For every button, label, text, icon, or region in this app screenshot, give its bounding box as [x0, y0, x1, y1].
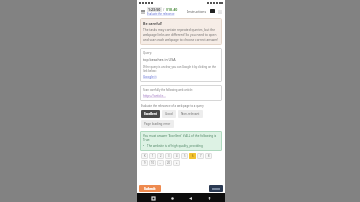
- staticText: Submit: [144, 187, 156, 191]
- button[interactable]: Submit: [139, 185, 161, 192]
- button[interactable]: Fullscreen: [210, 9, 215, 13]
- staticText: Instructions: [187, 9, 207, 14]
- button[interactable]: More options: [217, 9, 222, 14]
- staticText: 1:23:50: [148, 7, 161, 12]
- button[interactable]: 7: [197, 153, 204, 159]
- button[interactable]: Excellent: [141, 110, 160, 118]
- staticText: 1: [152, 154, 154, 158]
- staticText: Google it: [143, 75, 157, 79]
- staticText: 6: [192, 154, 194, 158]
- button[interactable]: https://article...: [143, 94, 219, 98]
- staticText: The website is of high quality, providin…: [147, 144, 203, 148]
- staticText: /: [163, 7, 165, 12]
- staticText: If the query is unclear, you can Google …: [143, 65, 219, 73]
- staticText: You must answer 'Excellent' if ALL of th…: [143, 134, 219, 142]
- staticText: K: [144, 154, 146, 158]
- staticText: +: [176, 161, 178, 165]
- staticText: 8: [208, 154, 210, 158]
- staticText: Non-relevant: [181, 112, 200, 116]
- button[interactable]: Next: [209, 185, 223, 192]
- button[interactable]: 20: [165, 160, 172, 166]
- button[interactable]: Page loading error: [141, 120, 174, 128]
- button[interactable]: Google it: [143, 75, 157, 79]
- button[interactable]: 4: [173, 153, 180, 159]
- staticText: Good: [165, 112, 173, 116]
- button[interactable]: 10: [149, 160, 156, 166]
- staticText: Query:: [143, 51, 152, 55]
- staticText: 7: [200, 154, 202, 158]
- button[interactable]: +: [173, 160, 180, 166]
- staticText: $18.40: [166, 7, 178, 12]
- staticText: 2: [160, 154, 162, 158]
- staticText: Page loading error: [144, 122, 171, 126]
- button[interactable]: K: [141, 153, 148, 159]
- button[interactable]: Menu: [140, 9, 145, 14]
- staticText: The tasks may contain repeated queries, …: [143, 28, 219, 42]
- button[interactable]: ...: [157, 160, 164, 166]
- staticText: 10: [151, 161, 154, 165]
- staticText: 5: [184, 154, 186, 158]
- button[interactable]: Assistant: [206, 195, 212, 201]
- button[interactable]: 9: [141, 160, 148, 166]
- staticText: Evaluate the relevance: [147, 12, 175, 16]
- staticText: 9: [144, 161, 146, 165]
- button[interactable]: 6: [189, 153, 196, 159]
- staticText: Excellent: [144, 112, 157, 116]
- button[interactable]: Good: [162, 110, 176, 118]
- button[interactable]: 5: [181, 153, 188, 159]
- button[interactable]: Back: [187, 195, 193, 201]
- staticText: Be careful!: [143, 21, 162, 26]
- staticText: 20: [167, 161, 170, 165]
- staticText: 3: [168, 154, 170, 158]
- button[interactable]: Instructions: [186, 9, 208, 14]
- staticText: ...: [159, 161, 162, 165]
- staticText: •: [143, 144, 145, 148]
- staticText: https://article...: [143, 94, 166, 98]
- staticText: Evaluate the relevance of a web page to …: [141, 104, 204, 108]
- button[interactable]: 3: [165, 153, 172, 159]
- button[interactable]: 8: [205, 153, 212, 159]
- staticText: Scan carefully the following web article…: [143, 88, 193, 92]
- button[interactable]: 2: [157, 153, 164, 159]
- button[interactable]: Non-relevant: [178, 110, 203, 118]
- button[interactable]: Recents: [150, 195, 156, 201]
- staticText: 4: [176, 154, 178, 158]
- button[interactable]: 1: [149, 153, 156, 159]
- staticText: top beaches in USA: [143, 57, 176, 62]
- button[interactable]: Home: [169, 195, 175, 201]
